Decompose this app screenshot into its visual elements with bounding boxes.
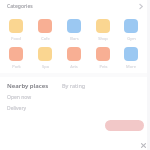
staticText: Categories [7,3,33,10]
staticText: Cafe [41,36,50,41]
staticText: Food [11,36,21,41]
button[interactable]: Open now [7,94,32,101]
button[interactable]: Gym [117,19,145,41]
button[interactable]: Spa [31,47,59,69]
staticText: Shop [98,36,108,41]
button[interactable]: Cafe [31,19,59,41]
staticText: More [126,64,136,69]
staticText: Gym [127,36,136,41]
button[interactable]: Dismiss [139,141,148,150]
button[interactable]: Arts [60,47,88,69]
button[interactable] [105,120,144,131]
button[interactable]: Delivery [7,105,27,112]
button[interactable]: See all categories [137,2,146,11]
staticText: Park [12,64,21,69]
button[interactable]: More [117,47,145,69]
button[interactable]: Park [2,47,30,69]
staticText: Bars [70,36,79,41]
staticText: Pets [99,64,108,69]
button[interactable]: By rating [62,82,86,89]
staticText: Arts [70,64,78,69]
button[interactable]: Bars [60,19,88,41]
staticText: Spa [42,64,49,69]
button[interactable]: Pets [89,47,117,69]
button[interactable]: Food [2,19,30,41]
button[interactable]: Shop [89,19,117,41]
staticText: Nearby places [7,82,49,90]
